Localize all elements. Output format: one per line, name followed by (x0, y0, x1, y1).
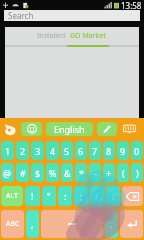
button[interactable]: + (103, 163, 115, 182)
staticText: : (64, 190, 67, 202)
button[interactable]: 1 (1, 141, 14, 160)
button[interactable]: ( (117, 163, 129, 182)
button[interactable]: ALT (1, 186, 23, 206)
staticText: 2 (20, 145, 26, 157)
staticText: ALT (6, 191, 18, 201)
button[interactable]: " (42, 186, 56, 206)
button[interactable]: Theme (97, 122, 117, 136)
button[interactable]: ABC (1, 210, 24, 238)
staticText: , (31, 218, 34, 230)
button[interactable]: & (61, 163, 73, 182)
staticText: ABC (6, 219, 20, 229)
staticText: ! (31, 190, 34, 202)
button[interactable]: , (26, 210, 39, 238)
button[interactable]: Emoji (21, 122, 42, 136)
button[interactable]: 3 (31, 141, 44, 160)
button[interactable]: . (105, 210, 118, 238)
staticText: Installed (37, 31, 66, 41)
staticText: 0 (134, 145, 140, 157)
button[interactable]: : (58, 186, 72, 206)
staticText: ( (122, 167, 125, 179)
button[interactable]: @ (1, 163, 14, 182)
button[interactable]: # (16, 163, 29, 182)
button[interactable]: 2 (16, 141, 29, 160)
button[interactable]: Hide keyboard (122, 123, 137, 136)
button[interactable]: 6 (75, 141, 87, 160)
staticText: 8 (106, 145, 112, 157)
staticText: 6 (78, 145, 84, 157)
button[interactable]: English (46, 122, 93, 136)
staticText: 4 (50, 145, 56, 157)
button[interactable]: 0 (131, 141, 143, 160)
button[interactable]: ? (106, 186, 120, 206)
button[interactable]: GO Keyboard menu (3, 123, 17, 136)
staticText: English (54, 123, 85, 135)
staticText: ? (111, 190, 115, 202)
button[interactable]: GO Market (67, 27, 109, 47)
button[interactable]: ) (131, 163, 143, 182)
button[interactable]: % (46, 163, 59, 182)
staticText: - (94, 167, 97, 179)
staticText: @ (3, 167, 12, 179)
staticText: ; (80, 190, 83, 202)
button[interactable]: Backspace (122, 186, 143, 206)
staticText: 3 (35, 145, 41, 157)
button[interactable]: / (90, 186, 104, 206)
button[interactable]: Installed (35, 27, 67, 47)
staticText: $ (35, 167, 41, 179)
button[interactable]: ; (74, 186, 88, 206)
staticText: & (64, 167, 71, 179)
button[interactable]: $ (31, 163, 44, 182)
staticText: 1 (5, 145, 11, 157)
button[interactable]: 8 (103, 141, 115, 160)
button[interactable]: Enter (120, 210, 143, 238)
staticText: . (110, 218, 113, 230)
button[interactable]: 5 (61, 141, 73, 160)
button[interactable]: ! (25, 186, 40, 206)
button[interactable]: 4 (46, 141, 59, 160)
staticText: ) (136, 167, 139, 179)
button[interactable]: 9 (117, 141, 129, 160)
staticText: 5 (64, 145, 70, 157)
staticText: GO Market (70, 31, 106, 41)
button[interactable]: Search (4, 10, 140, 21)
staticText: # (20, 167, 26, 179)
staticText: Search (8, 10, 34, 21)
button[interactable]: Space (41, 210, 103, 238)
staticText: / (95, 190, 99, 202)
button[interactable]: 7 (89, 141, 101, 160)
staticText: 7 (92, 145, 98, 157)
staticText: * (79, 167, 84, 179)
staticText: 13:58 (121, 0, 142, 10)
button[interactable]: * (75, 163, 87, 182)
staticText: " (47, 190, 51, 202)
staticText: 9 (120, 145, 126, 157)
button[interactable]: - (89, 163, 101, 182)
staticText: % (49, 167, 57, 179)
staticText: + (106, 167, 112, 179)
